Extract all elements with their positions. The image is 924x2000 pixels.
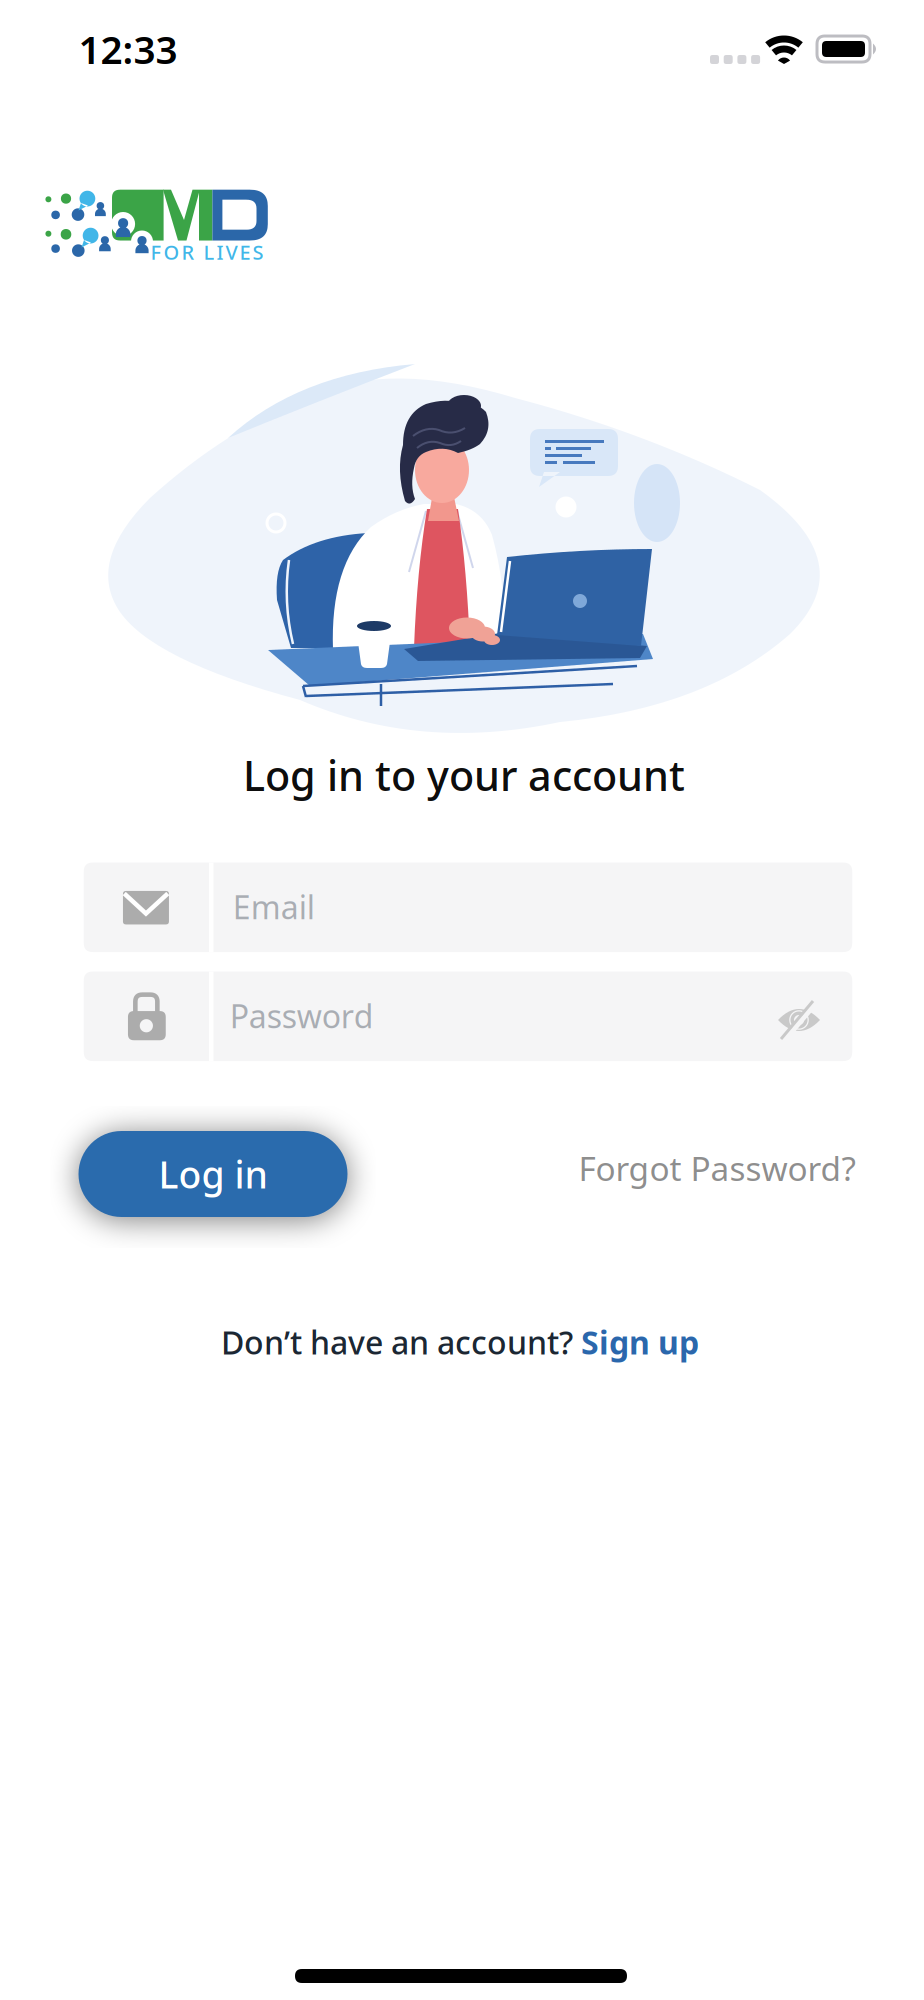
- staticText: Don’t have an account?: [221, 1321, 581, 1363]
- staticText: FOR LIVES: [150, 239, 263, 265]
- button[interactable]: Password: [84, 971, 852, 1061]
- staticText: 12:33: [78, 23, 177, 75]
- staticText: Sign up: [581, 1321, 699, 1363]
- staticText: Password: [230, 995, 374, 1037]
- staticText: Forgot Password?: [578, 1146, 855, 1190]
- button[interactable]: Show password: [771, 999, 827, 1043]
- button[interactable]: Sign up: [581, 1321, 699, 1363]
- staticText: Log in to your account: [243, 748, 685, 802]
- button[interactable]: Email: [84, 862, 852, 952]
- button[interactable]: Log in: [78, 1131, 347, 1217]
- staticText: Log in: [158, 1149, 267, 1199]
- staticText: Email: [233, 886, 315, 928]
- button[interactable]: Forgot Password?: [578, 1146, 855, 1190]
